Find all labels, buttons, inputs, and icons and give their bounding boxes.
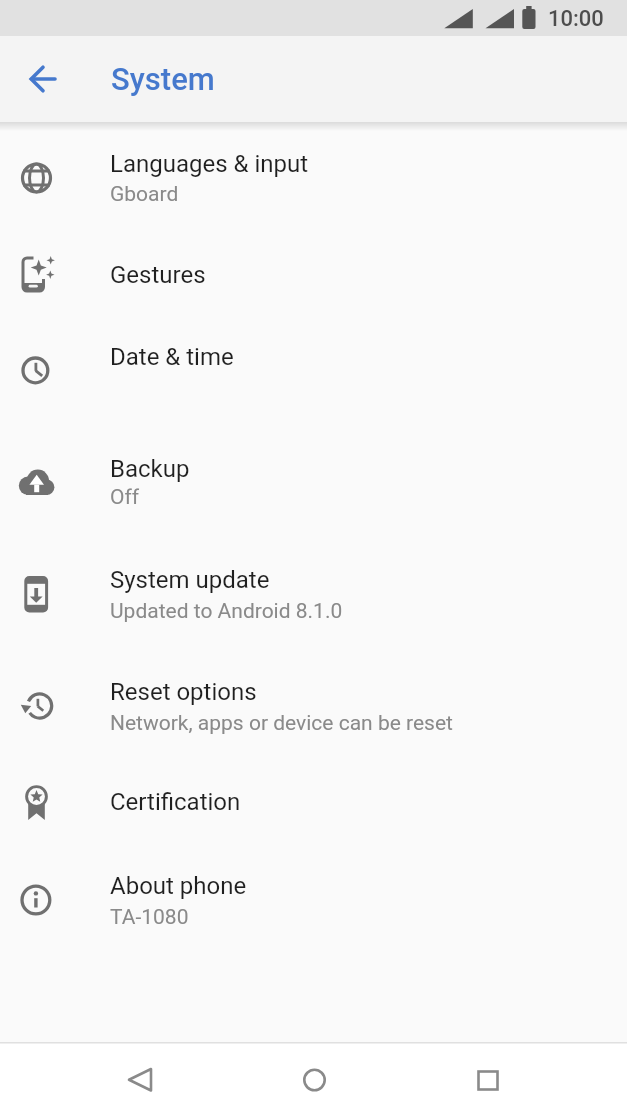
- button[interactable]: [0, 761, 627, 851]
- staticText: Updated to Android 8.1.0: [110, 599, 343, 624]
- staticText: Gestures: [110, 261, 206, 289]
- staticText: System: [111, 61, 215, 97]
- staticText: Date & time: [110, 343, 234, 371]
- button[interactable]: [0, 538, 627, 650]
- staticText: TA-1080: [110, 905, 189, 930]
- staticText: Backup: [110, 455, 190, 483]
- button[interactable]: [0, 227, 627, 324]
- staticText: Network, apps or device can be reset: [110, 711, 453, 736]
- button[interactable]: [80, 1052, 199, 1108]
- staticText: Languages & input: [110, 150, 309, 178]
- button[interactable]: [0, 851, 627, 948]
- button[interactable]: [428, 1052, 547, 1108]
- staticText: Gboard: [110, 182, 179, 207]
- staticText: 10:00: [548, 6, 604, 32]
- staticText: Off: [110, 485, 140, 510]
- staticText: Reset options: [110, 678, 257, 706]
- staticText: Certification: [110, 788, 241, 816]
- button[interactable]: [255, 1052, 374, 1108]
- button[interactable]: [20, 56, 83, 102]
- button[interactable]: [0, 650, 627, 761]
- button[interactable]: [0, 427, 627, 538]
- button[interactable]: [0, 124, 627, 227]
- staticText: System update: [110, 566, 270, 594]
- button[interactable]: [0, 324, 627, 427]
- staticText: About phone: [110, 872, 247, 900]
